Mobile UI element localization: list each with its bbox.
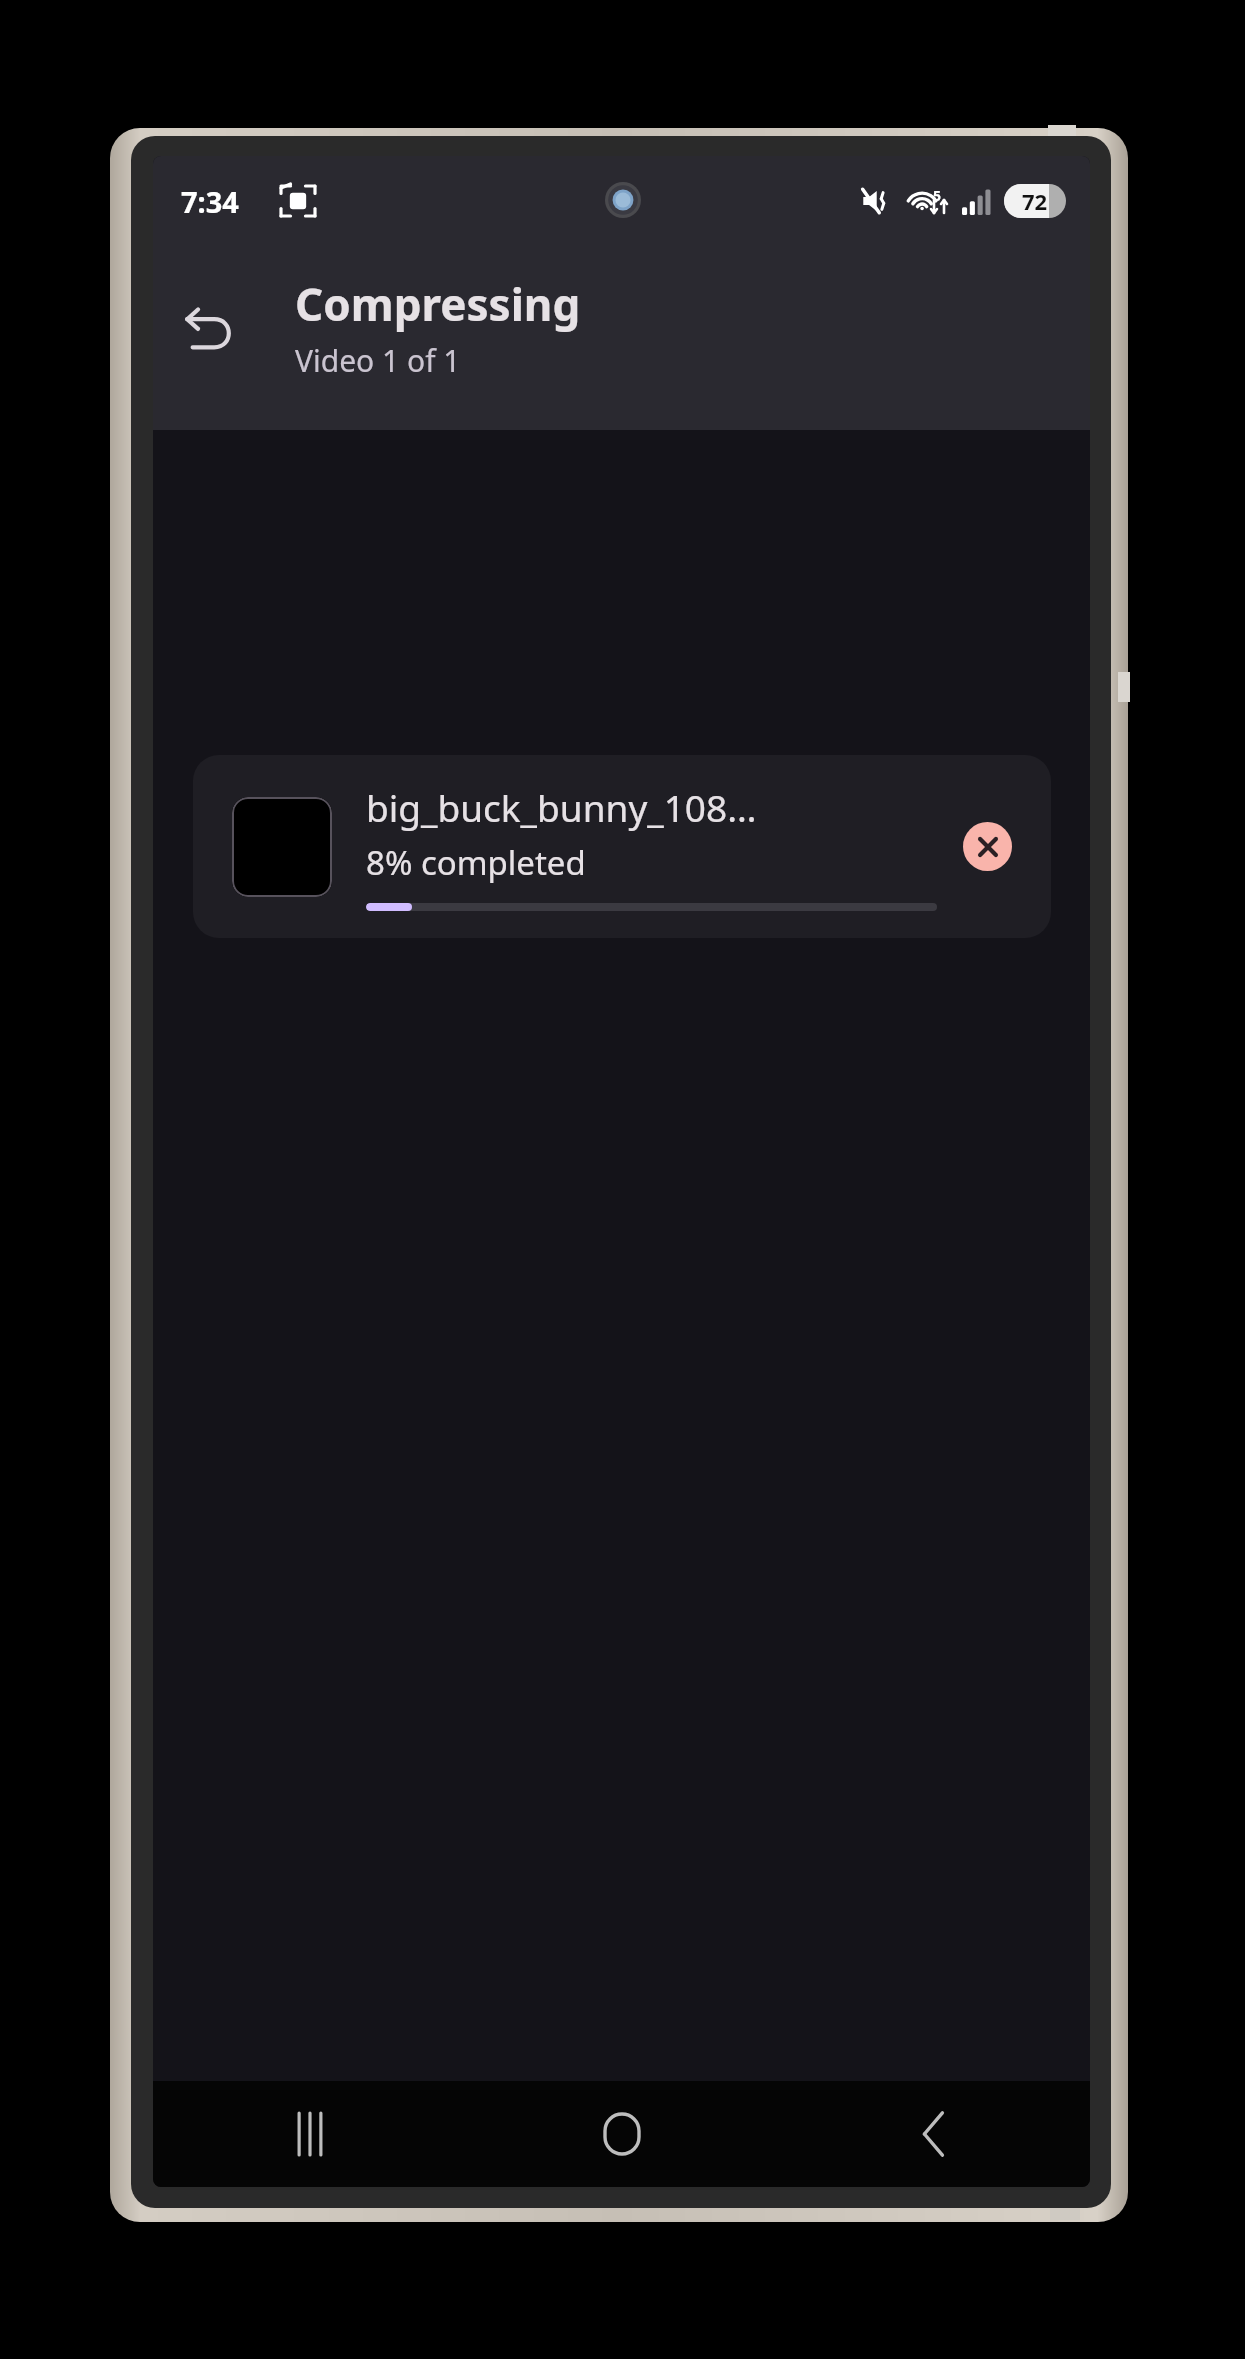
staticText: 72: [1022, 186, 1048, 216]
staticText: Video 1 of 1: [295, 340, 461, 381]
button[interactable]: Cancel compression: [963, 822, 1012, 871]
staticText: 5: [933, 186, 942, 205]
staticText: Compressing: [295, 274, 581, 334]
staticText: big_buck_bunny_108…: [366, 782, 757, 832]
staticText: 7:34: [181, 182, 239, 221]
button[interactable]: big_buck_bunny_108…: [193, 755, 1051, 938]
staticText: 8% completed: [366, 840, 586, 885]
button[interactable]: Back: [778, 2081, 1090, 2187]
button[interactable]: Home: [466, 2081, 778, 2187]
button[interactable]: Back: [163, 282, 259, 378]
button[interactable]: Recent apps: [153, 2081, 466, 2187]
